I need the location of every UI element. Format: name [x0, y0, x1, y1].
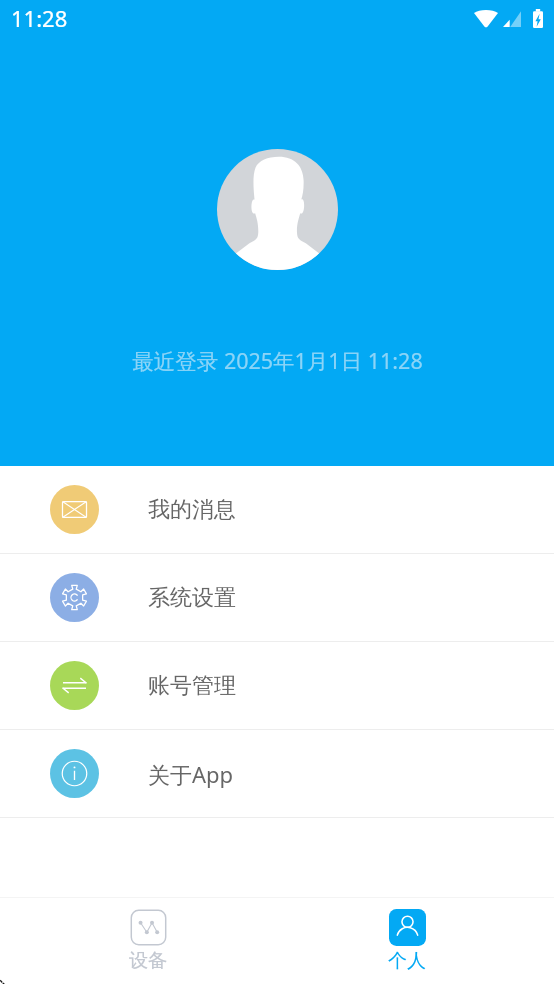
staticText: 系统设置 [148, 584, 236, 612]
button[interactable]: Profile photo [217, 149, 338, 270]
staticText: 账号管理 [148, 672, 236, 700]
button[interactable]: 设备 [113, 905, 183, 977]
staticText: 11:28 [11, 3, 68, 33]
staticText: 关于App [148, 759, 234, 789]
staticText: 我的消息 [148, 496, 236, 524]
staticText: 最近登录 2025年1月1日 11:28 [132, 346, 423, 375]
button[interactable]: 系统设置 [0, 554, 554, 641]
button[interactable]: 设备 [0, 898, 277, 984]
button[interactable]: 账号管理 [0, 642, 554, 729]
staticText: 设备 [129, 949, 167, 973]
button[interactable]: 个人 [372, 905, 442, 977]
button[interactable]: 关于App [0, 730, 554, 817]
staticText: 个人 [388, 949, 426, 973]
button[interactable]: 我的消息 [0, 466, 554, 553]
button[interactable]: 个人 [277, 898, 554, 984]
